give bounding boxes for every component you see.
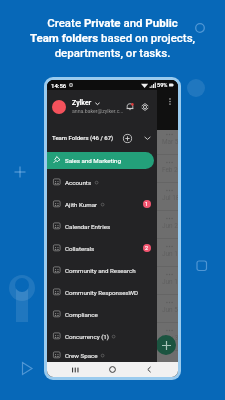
staticText: anna.baker@zylker.c...	[72, 108, 124, 114]
button[interactable]: Community ResponsesWD	[47, 281, 157, 303]
button[interactable]: Collapse	[142, 133, 152, 143]
button[interactable]: Compliance	[47, 303, 157, 325]
button[interactable]: Recent apps	[57, 362, 94, 377]
staticText: Crew Space	[65, 352, 98, 359]
staticText: Team Folders (46 / 67)	[52, 134, 114, 141]
staticText: Accounts	[65, 179, 92, 186]
button[interactable]: Profile	[52, 100, 66, 114]
staticText: 59%	[157, 82, 168, 89]
staticText: Calendar Entries	[65, 223, 111, 230]
staticText: Compliance	[65, 311, 98, 318]
staticText: Community ResponsesWD	[65, 289, 139, 296]
button[interactable]: Back	[131, 362, 168, 377]
staticText: Ajith Kumar	[65, 201, 98, 208]
button[interactable]: Concurrency (1)	[47, 325, 157, 347]
staticText: Jun 5	[162, 306, 178, 314]
button[interactable]: Collaterals	[47, 237, 157, 259]
button[interactable]: Crew Space	[47, 347, 157, 362]
button[interactable]: Notifications	[124, 101, 135, 112]
staticText: Jun 25	[162, 222, 178, 230]
button[interactable]: Home	[94, 362, 131, 377]
staticText: Jul 18	[162, 194, 178, 202]
button[interactable]: Community and Research	[47, 259, 157, 281]
staticText: Collaterals	[65, 245, 95, 252]
staticText: Zylker	[72, 99, 92, 107]
button[interactable]: Ajith Kumar	[47, 193, 157, 215]
staticText: Mar 5	[162, 138, 178, 146]
staticText: Jun 10	[162, 250, 178, 258]
button[interactable]: Settings	[139, 101, 150, 112]
staticText: Concurrency (1)	[65, 333, 109, 340]
button[interactable]: Accounts	[47, 171, 157, 193]
staticText: 14:56	[51, 82, 67, 89]
staticText: Jun 12	[162, 278, 178, 286]
staticText: Feb 20	[162, 166, 178, 174]
button[interactable]: More options	[169, 98, 171, 105]
button[interactable]: Sales and Marketing	[47, 149, 157, 171]
staticText: Create Private and Public Team folders b…	[6, 16, 219, 60]
button[interactable]: Add	[156, 335, 176, 355]
staticText: 1	[145, 201, 149, 207]
button[interactable]: Calendar Entries	[47, 215, 157, 237]
staticText: Nov 3	[162, 334, 178, 342]
staticText: 2	[145, 245, 149, 251]
staticText: Community and Research	[65, 267, 136, 274]
button[interactable]: Create folder	[121, 132, 133, 144]
staticText: Sales and Marketing	[65, 157, 122, 164]
